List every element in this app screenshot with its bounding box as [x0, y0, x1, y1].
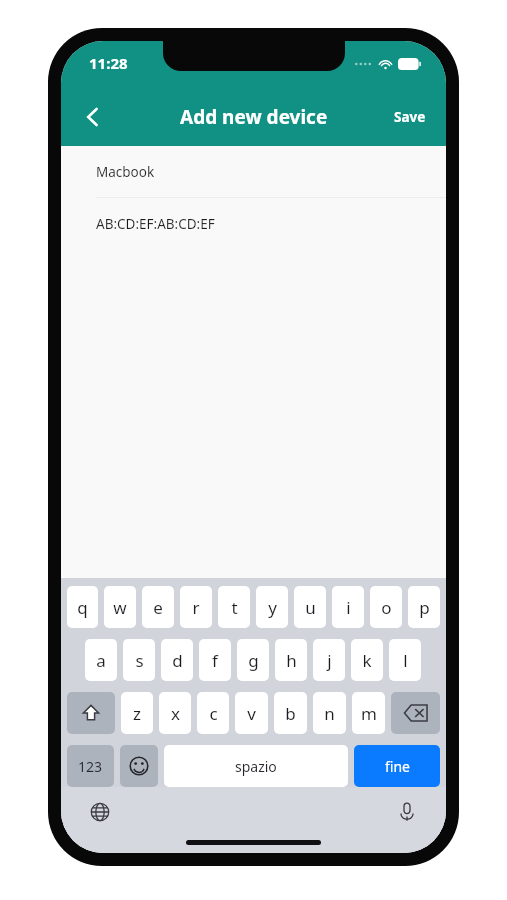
button[interactable]: f: [199, 639, 231, 681]
staticText: Macbook: [96, 163, 155, 181]
staticText: u: [305, 596, 316, 619]
staticText: g: [248, 649, 259, 672]
staticText: l: [403, 649, 408, 672]
button[interactable]: z: [121, 692, 153, 734]
button[interactable]: a: [85, 639, 117, 681]
staticText: v: [247, 702, 256, 725]
staticText: m: [361, 702, 377, 725]
button[interactable]: t: [218, 586, 250, 628]
staticText: e: [153, 596, 163, 619]
button[interactable]: e: [142, 586, 174, 628]
staticText: t: [231, 596, 238, 619]
staticText: j: [327, 649, 332, 672]
button[interactable]: p: [408, 586, 440, 628]
button[interactable]: j: [313, 639, 345, 681]
button[interactable]: w: [104, 586, 136, 628]
button[interactable]: fine: [354, 745, 440, 787]
staticText: h: [286, 649, 297, 672]
staticText: s: [135, 649, 144, 672]
staticText: k: [362, 649, 372, 672]
staticText: z: [133, 702, 141, 725]
button[interactable]: n: [313, 692, 346, 734]
staticText: d: [172, 649, 183, 672]
staticText: c: [209, 702, 218, 725]
button[interactable]: Backspace: [391, 692, 440, 734]
button[interactable]: Emoji: [120, 745, 158, 787]
button[interactable]: Save: [384, 98, 436, 136]
button[interactable]: AB:CD:EF:AB:CD:EF: [61, 198, 446, 249]
staticText: f: [212, 649, 218, 672]
button[interactable]: c: [197, 692, 229, 734]
button[interactable]: s: [123, 639, 155, 681]
staticText: r: [192, 596, 200, 619]
button[interactable]: 123: [67, 745, 114, 787]
staticText: i: [346, 596, 351, 619]
button[interactable]: Dictation: [388, 793, 426, 831]
button[interactable]: q: [67, 586, 98, 628]
button[interactable]: l: [389, 639, 421, 681]
button[interactable]: g: [237, 639, 269, 681]
button[interactable]: y: [256, 586, 288, 628]
button[interactable]: Change keyboard language: [81, 793, 119, 831]
button[interactable]: spazio: [164, 745, 348, 787]
staticText: p: [419, 596, 430, 619]
staticText: a: [96, 649, 106, 672]
button[interactable]: b: [274, 692, 307, 734]
staticText: o: [381, 596, 392, 619]
staticText: spazio: [235, 757, 277, 776]
staticText: fine: [385, 757, 410, 776]
button[interactable]: h: [275, 639, 307, 681]
button[interactable]: Shift: [67, 692, 115, 734]
button[interactable]: Back: [71, 95, 115, 139]
staticText: w: [113, 596, 127, 619]
button[interactable]: d: [161, 639, 193, 681]
staticText: q: [77, 596, 88, 619]
staticText: 11:28: [89, 53, 128, 73]
button[interactable]: v: [235, 692, 268, 734]
staticText: Save: [394, 108, 426, 126]
staticText: AB:CD:EF:AB:CD:EF: [96, 215, 215, 233]
staticText: x: [171, 702, 180, 725]
staticText: 123: [78, 757, 103, 776]
button[interactable]: o: [370, 586, 402, 628]
button[interactable]: x: [159, 692, 191, 734]
button[interactable]: u: [294, 586, 326, 628]
button[interactable]: i: [332, 586, 364, 628]
staticText: Add new device: [180, 104, 328, 130]
staticText: y: [268, 596, 277, 619]
button[interactable]: m: [352, 692, 385, 734]
staticText: b: [285, 702, 296, 725]
staticText: n: [324, 702, 335, 725]
button[interactable]: k: [351, 639, 383, 681]
button[interactable]: Macbook: [61, 146, 446, 197]
button[interactable]: r: [180, 586, 212, 628]
